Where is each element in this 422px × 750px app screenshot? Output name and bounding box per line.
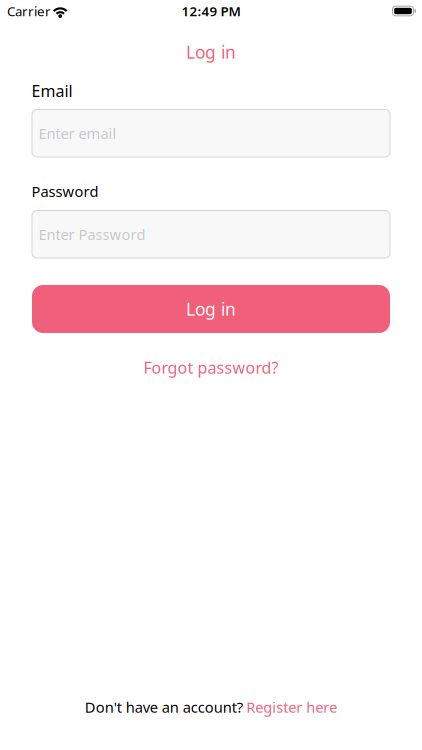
- staticText: Register here: [246, 697, 337, 717]
- staticText: Log in: [186, 40, 236, 63]
- button[interactable]: Register here: [246, 697, 337, 717]
- staticText: Password: [31, 182, 98, 201]
- staticText: Enter Password: [38, 224, 145, 244]
- staticText: Don't have an account?: [85, 697, 243, 717]
- staticText: Enter email: [38, 123, 116, 143]
- button[interactable]: Log in: [32, 285, 390, 333]
- staticText: Log in: [186, 297, 236, 320]
- button[interactable]: Enter email: [32, 109, 390, 157]
- button[interactable]: Forgot password?: [143, 360, 278, 376]
- staticText: Carrier: [7, 2, 51, 20]
- staticText: 12:49 PM: [181, 2, 240, 20]
- button[interactable]: Enter Password: [32, 210, 390, 258]
- staticText: Forgot password?: [143, 357, 278, 378]
- staticText: Email: [31, 80, 72, 101]
